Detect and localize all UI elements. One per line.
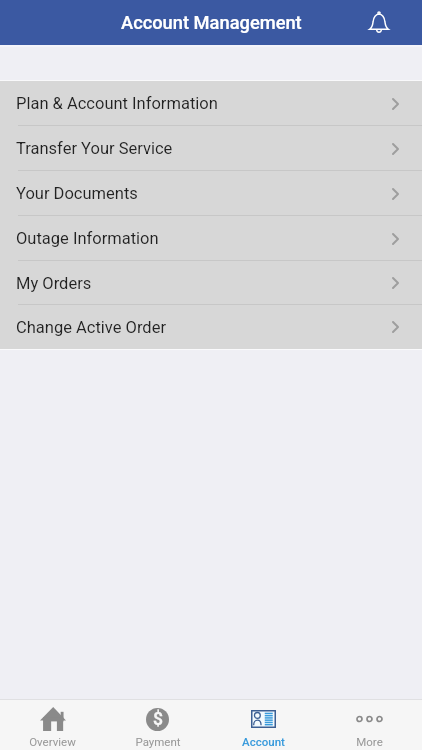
staticText: Change Active Order (16, 318, 166, 337)
staticText: $ (153, 709, 163, 730)
staticText: Plan & Account Information (16, 94, 218, 113)
button[interactable]: More (316, 700, 422, 750)
button[interactable]: Transfer Your Service (0, 126, 422, 171)
button[interactable]: My Orders (0, 261, 422, 305)
button[interactable]: Plan & Account Information (0, 81, 422, 126)
button[interactable]: $ (105, 700, 210, 750)
button[interactable]: Outage Information (0, 216, 422, 261)
staticText: Payment (135, 735, 181, 748)
staticText: Overview (29, 735, 76, 748)
button[interactable]: Overview (0, 700, 105, 750)
button[interactable]: Notifications (367, 10, 391, 34)
button[interactable]: Your Documents (0, 171, 422, 216)
staticText: Your Documents (16, 184, 138, 203)
staticText: My Orders (16, 274, 92, 293)
staticText: More (356, 735, 383, 748)
staticText: Account Management (121, 12, 302, 33)
button[interactable]: Change Active Order (0, 305, 422, 349)
button[interactable]: Account (210, 700, 316, 750)
staticText: Account (242, 735, 285, 748)
staticText: Transfer Your Service (16, 139, 173, 158)
staticText: Outage Information (16, 229, 159, 248)
